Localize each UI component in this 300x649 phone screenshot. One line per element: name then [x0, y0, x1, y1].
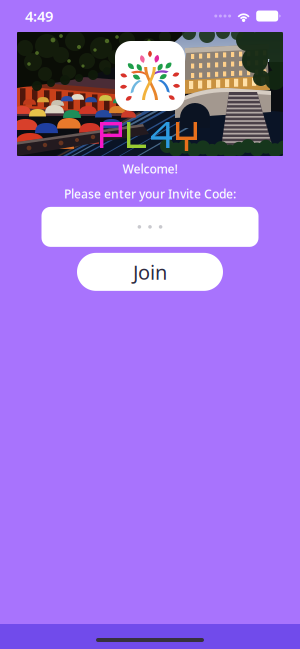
- staticText: 4:49: [25, 6, 53, 26]
- button[interactable]: Invite Code: [41, 207, 258, 247]
- button[interactable]: Join: [77, 253, 223, 291]
- staticText: Welcome!: [122, 161, 177, 177]
- staticText: Please enter your Invite Code:: [64, 186, 236, 202]
- staticText: Join: [133, 259, 167, 285]
